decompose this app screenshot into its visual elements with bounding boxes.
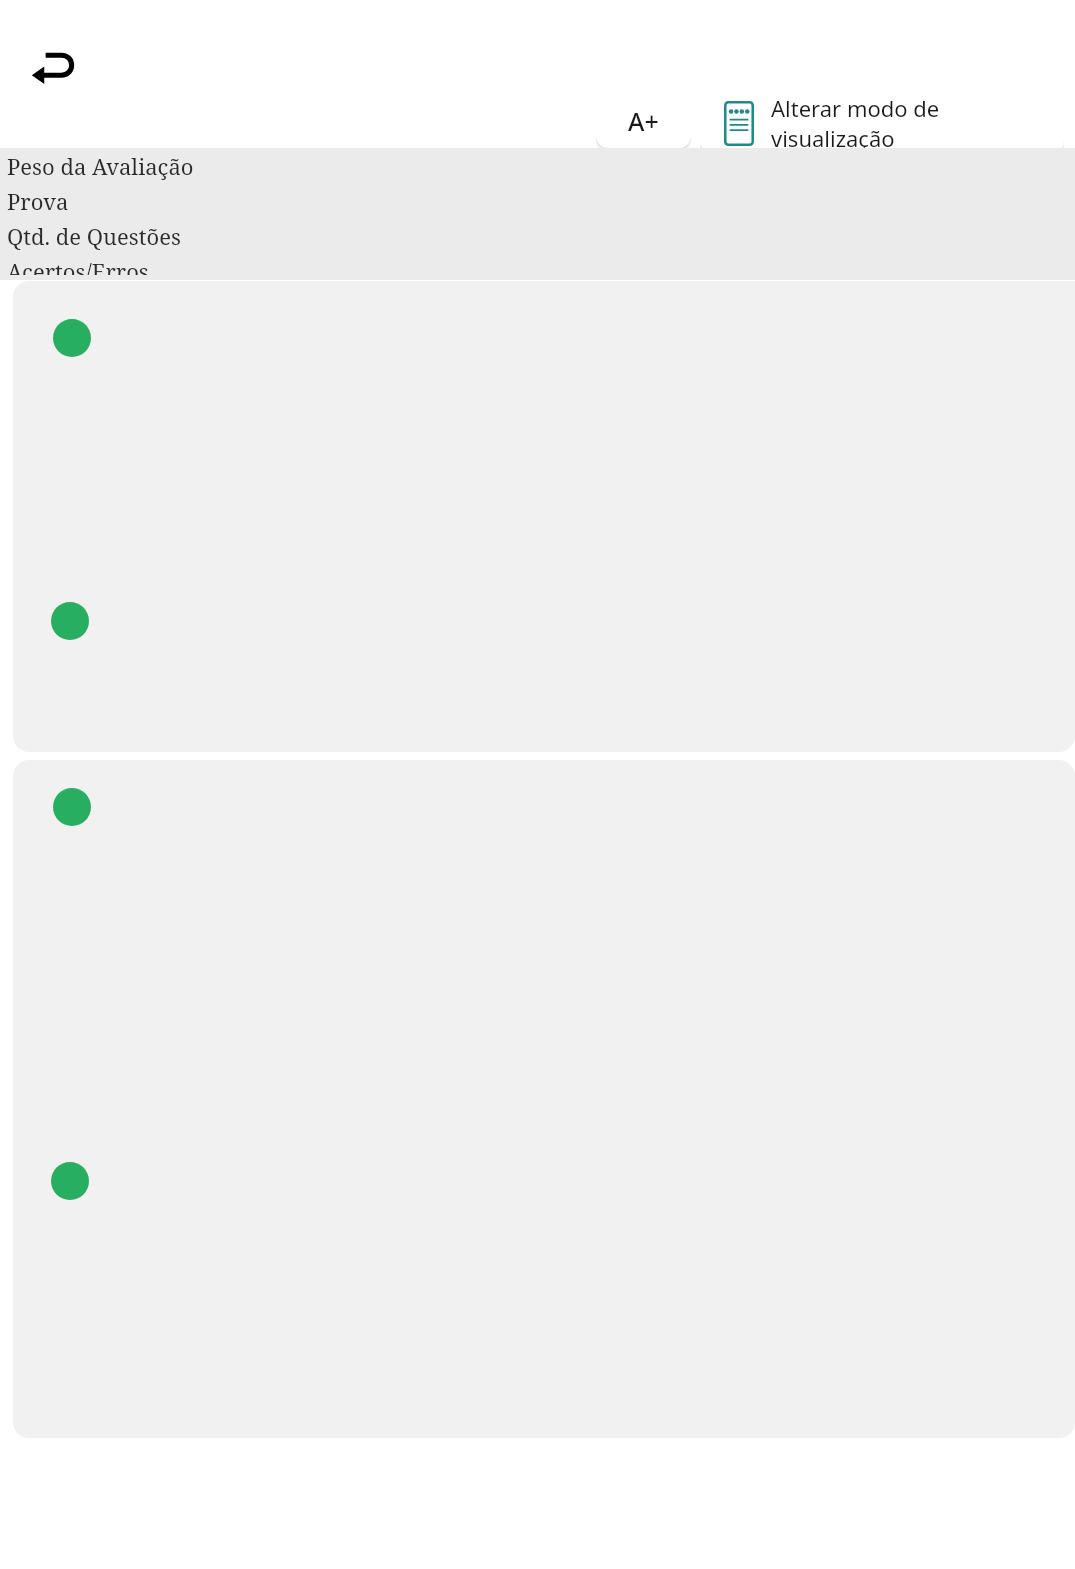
staticText: Peso da Avaliação [7, 151, 194, 181]
staticText: Qtd. de Questões [7, 221, 181, 251]
staticText: Acertos/Erros [7, 256, 149, 275]
button[interactable]: Voltar [17, 37, 89, 99]
staticText: Prova [7, 186, 69, 216]
button[interactable]: A+ [596, 93, 691, 148]
button[interactable] [13, 760, 1075, 1438]
button[interactable]: Alterar modo de visualização [700, 93, 1064, 153]
staticText: A+ [628, 104, 659, 138]
button[interactable] [13, 281, 1075, 752]
staticText: Alterar modo de visualização [771, 93, 1064, 153]
